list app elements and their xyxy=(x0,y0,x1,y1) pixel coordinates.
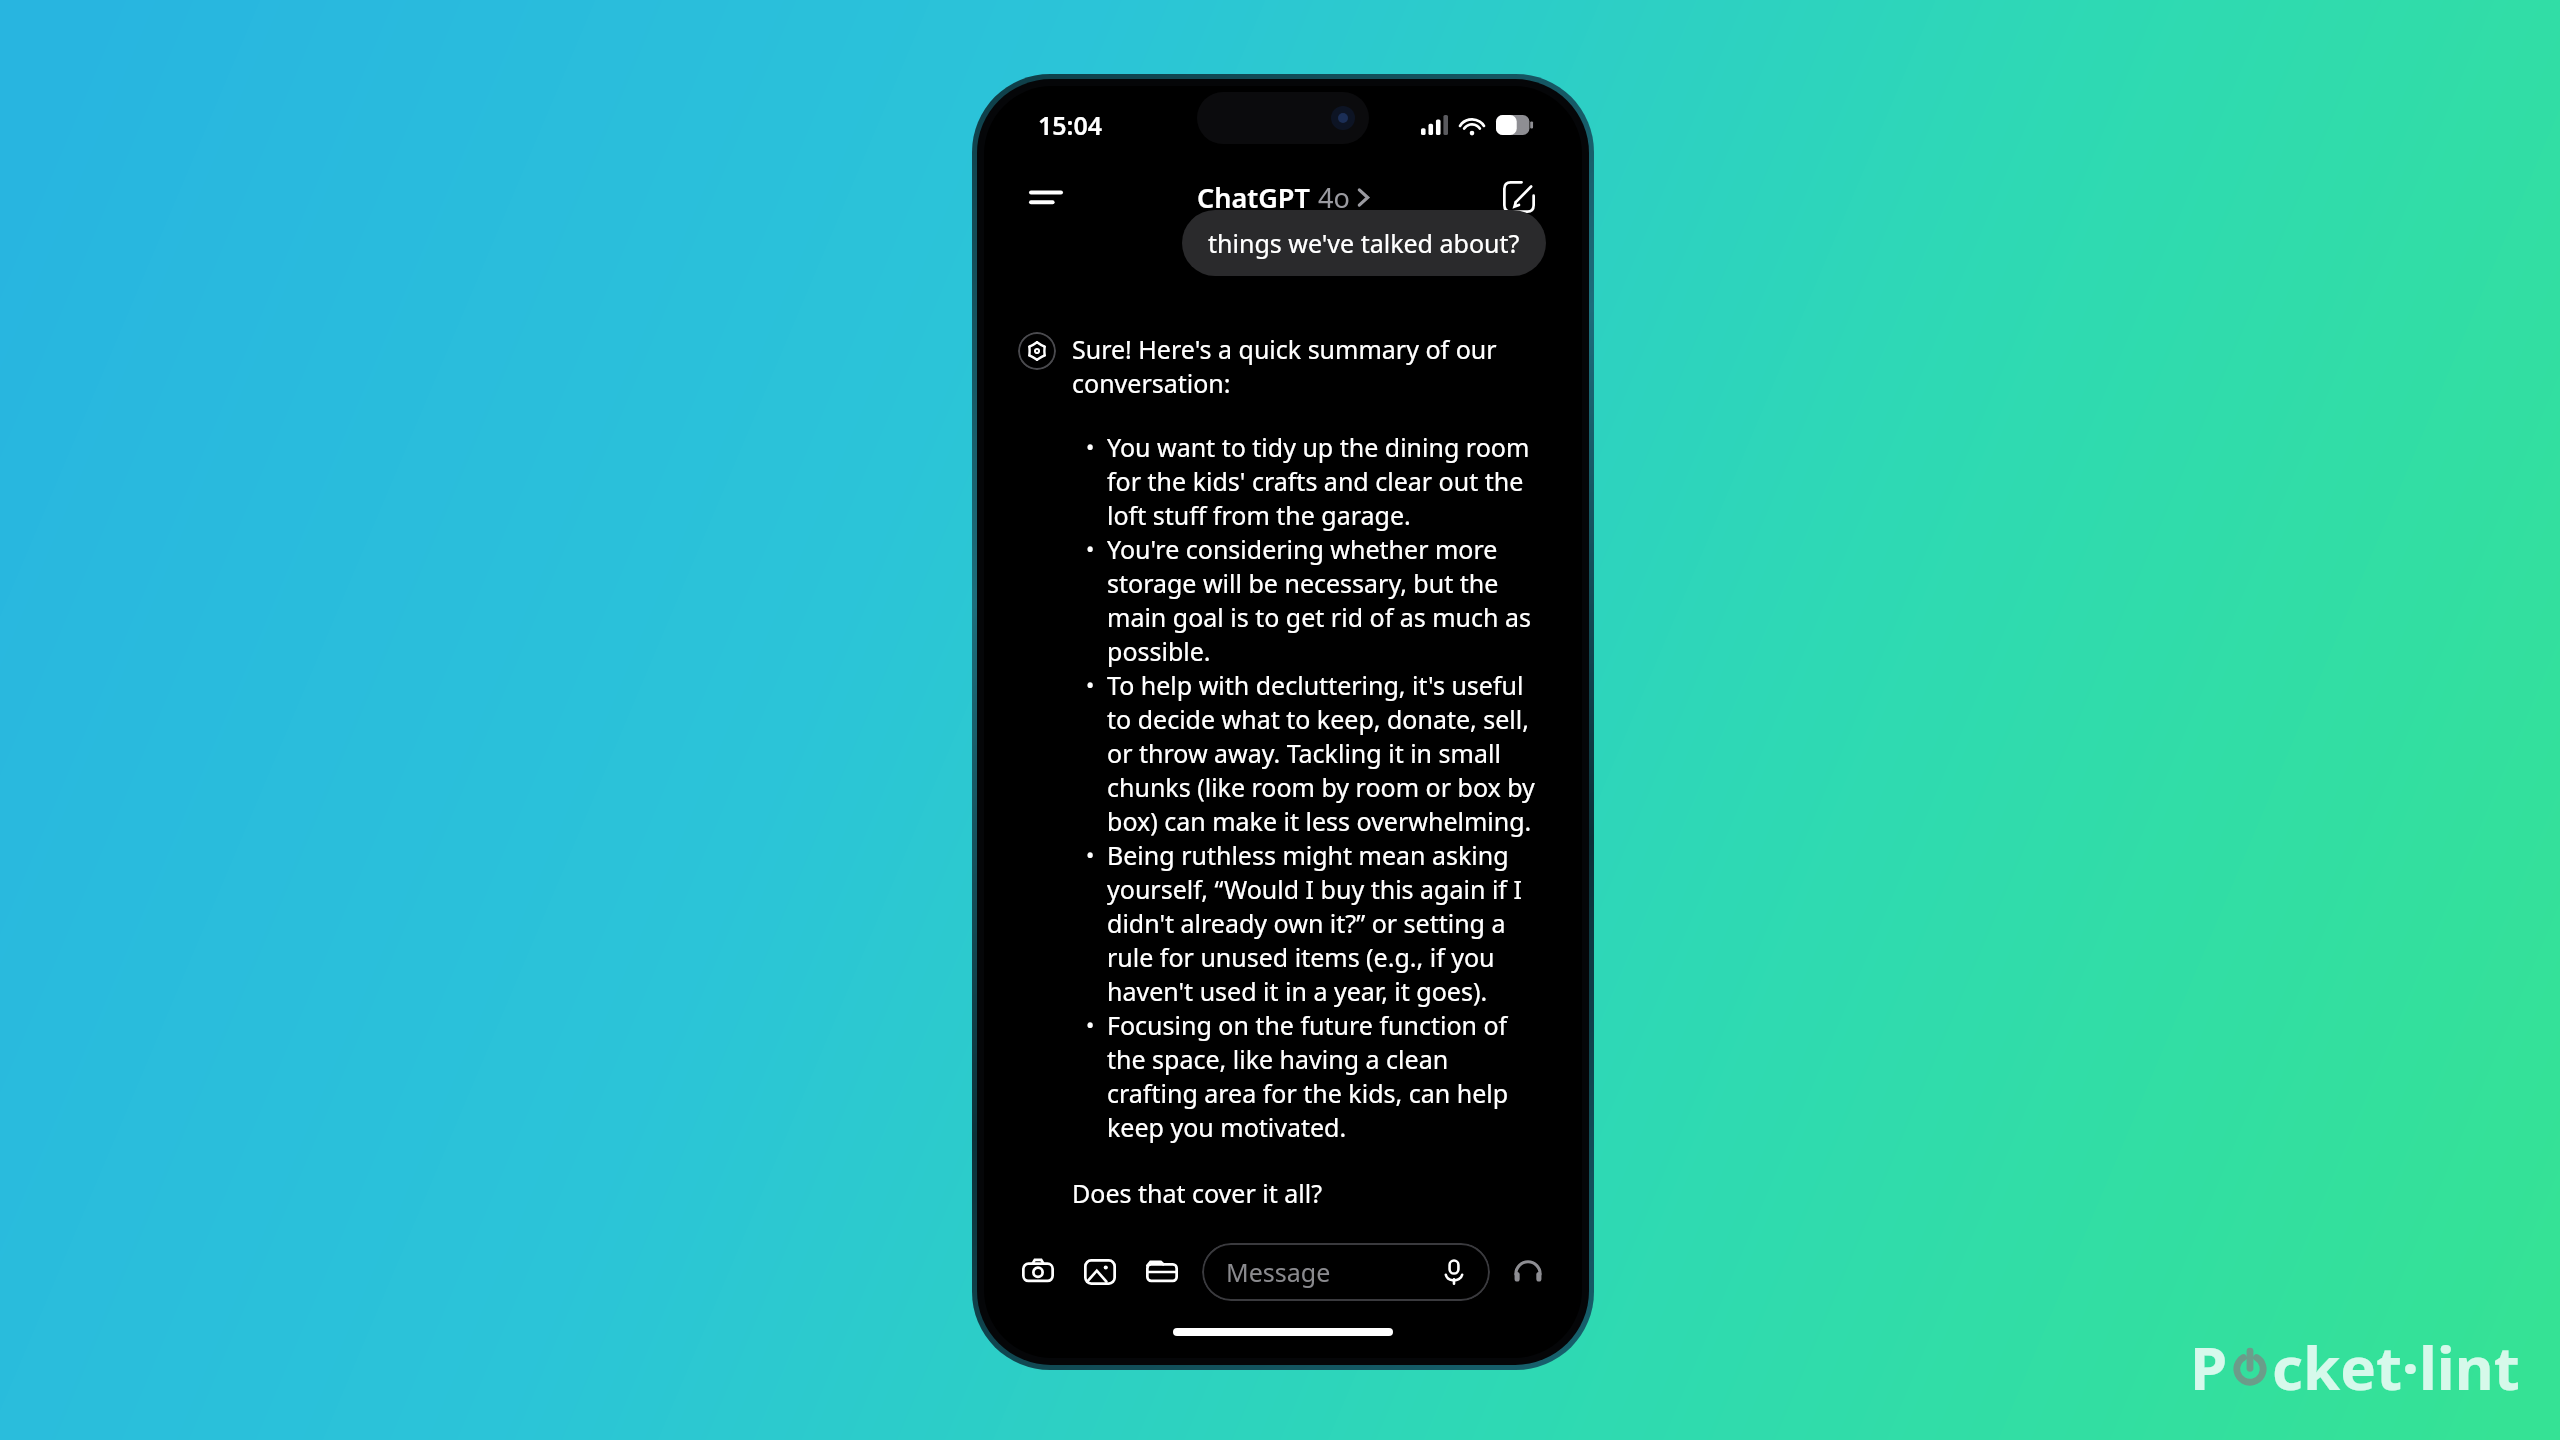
button[interactable]: Menu xyxy=(1020,171,1072,223)
staticText: Message xyxy=(1226,1255,1436,1289)
staticText: cket·lint xyxy=(2272,1326,2520,1408)
staticText: Being ruthless might mean asking yoursel… xyxy=(1107,838,1544,1008)
button[interactable]: New chat xyxy=(1492,170,1546,224)
button[interactable]: Files xyxy=(1138,1248,1186,1296)
staticText: 15:04 xyxy=(1038,108,1103,142)
button[interactable]: Message xyxy=(1202,1243,1490,1301)
button[interactable]: Voice input xyxy=(1436,1254,1472,1290)
staticText: To help with decluttering, it's useful t… xyxy=(1107,668,1544,838)
button[interactable]: things we've talked about? xyxy=(1208,226,1520,260)
button[interactable]: ChatGPT xyxy=(1197,179,1369,216)
staticText: 4o xyxy=(1318,179,1350,216)
staticText: Focusing on the future function of the s… xyxy=(1107,1008,1544,1144)
staticText: Does that cover it all? xyxy=(1072,1176,1322,1210)
staticText: • xyxy=(1086,533,1095,563)
staticText: • xyxy=(1086,669,1095,699)
staticText: things we've talked about? xyxy=(1208,226,1520,260)
staticText: You want to tidy up the dining room for … xyxy=(1107,430,1544,532)
button[interactable]: Camera xyxy=(1014,1248,1062,1296)
staticText: • xyxy=(1086,839,1095,869)
staticText: Sure! Here's a quick summary of our conv… xyxy=(1072,332,1544,400)
staticText: • xyxy=(1086,1009,1095,1039)
button[interactable]: Photos xyxy=(1076,1248,1124,1296)
button[interactable]: Voice mode xyxy=(1504,1248,1552,1296)
staticText: P xyxy=(2190,1326,2228,1408)
staticText: You're considering whether more storage … xyxy=(1107,532,1544,668)
staticText: • xyxy=(1086,431,1095,461)
staticText: ChatGPT xyxy=(1197,179,1310,216)
